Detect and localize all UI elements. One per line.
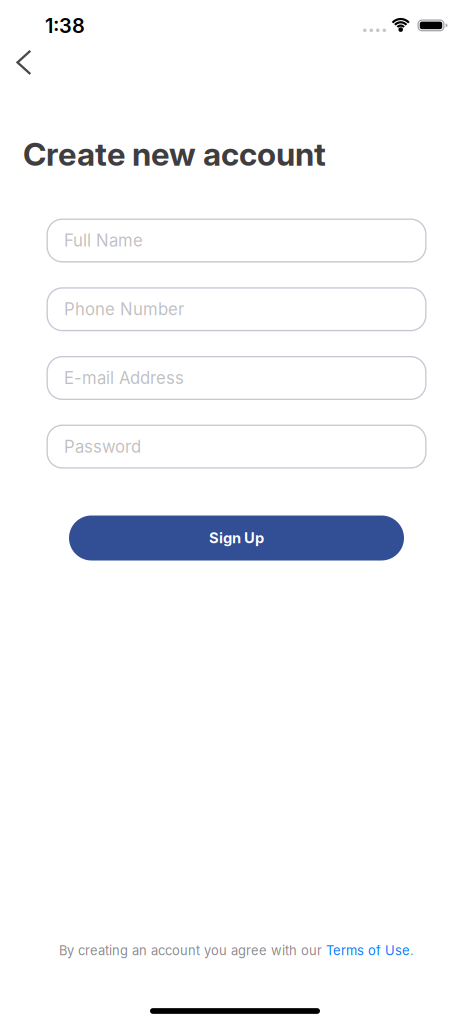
staticText: Terms of Use (326, 943, 410, 958)
button[interactable]: Phone Number (46, 287, 426, 331)
staticText: Sign Up (209, 529, 264, 547)
staticText: By creating an account you agree with ou… (59, 943, 326, 958)
button[interactable]: Full Name (46, 218, 426, 262)
staticText: Phone Number (64, 299, 184, 319)
button[interactable]: Password (46, 425, 426, 469)
staticText: E-mail Address (64, 368, 184, 388)
staticText: 1:38 (45, 14, 85, 38)
staticText: Password (64, 436, 141, 457)
button[interactable]: Sign Up (69, 515, 404, 560)
staticText: Full Name (64, 230, 143, 251)
staticText: . (410, 943, 414, 958)
button[interactable]: E-mail Address (46, 356, 426, 400)
button[interactable] (7, 41, 40, 84)
staticText: Create new account (23, 135, 326, 173)
button[interactable]: Terms of Use (326, 943, 410, 958)
